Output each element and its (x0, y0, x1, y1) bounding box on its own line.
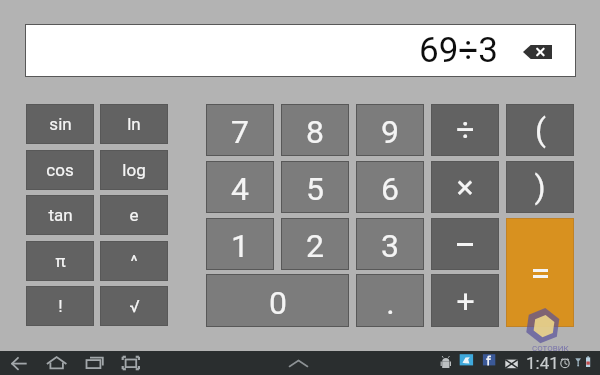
button[interactable]: 1 (207, 219, 273, 269)
button[interactable]: ) (507, 162, 573, 212)
button[interactable]: 2 (282, 219, 348, 269)
button[interactable]: 4 (207, 162, 273, 212)
button[interactable]: Show notifications (286, 351, 311, 375)
staticText: × (456, 168, 474, 206)
button[interactable]: 6 (357, 162, 423, 212)
button[interactable]: Recent apps (82, 351, 107, 375)
staticText: tan (48, 205, 73, 225)
staticText: 4 (231, 170, 249, 208)
button[interactable]: ! (27, 287, 93, 325)
staticText: π (55, 251, 66, 271)
staticText: СОТОВИК (532, 344, 569, 353)
button[interactable]: ( (507, 105, 573, 155)
staticText: log (122, 160, 146, 180)
button[interactable]: Screenshot (118, 351, 143, 375)
staticText: + (456, 282, 475, 320)
button[interactable]: log (101, 151, 167, 189)
staticText: 5 (306, 170, 324, 208)
button[interactable]: √ (101, 287, 167, 325)
staticText: 0 (269, 284, 287, 322)
button[interactable]: Equals (507, 219, 573, 326)
button[interactable]: e (101, 196, 167, 234)
staticText: e (129, 205, 139, 225)
staticText: . (386, 284, 395, 322)
staticText: 8 (306, 113, 324, 151)
staticText: ) (534, 168, 546, 206)
button[interactable]: 0 (207, 275, 348, 326)
staticText: ÷ (456, 111, 475, 149)
button[interactable]: cos (27, 151, 93, 189)
staticText: 1:41 (526, 353, 559, 373)
staticText: ( (535, 111, 546, 149)
button[interactable]: . (357, 275, 423, 326)
staticText: 6 (381, 170, 399, 208)
staticText: cos (46, 160, 74, 180)
staticText: ln (127, 114, 141, 134)
button[interactable]: × (432, 162, 498, 212)
button[interactable]: ln (101, 105, 167, 143)
button[interactable]: ÷ (432, 105, 498, 155)
staticText: 7 (231, 113, 249, 151)
staticText: 69÷3 (419, 30, 499, 71)
staticText: ^ (130, 251, 138, 271)
staticText: sin (49, 114, 72, 134)
staticText: √ (129, 296, 140, 316)
button[interactable]: ^ (101, 242, 167, 280)
button[interactable]: + (432, 275, 498, 326)
button[interactable]: Status (434, 351, 596, 375)
staticText: 9 (381, 113, 399, 151)
button[interactable]: tan (27, 196, 93, 234)
button[interactable]: sin (27, 105, 93, 143)
button[interactable]: 3 (357, 219, 423, 269)
button[interactable]: Delete (523, 45, 552, 59)
staticText: ! (58, 296, 63, 316)
button[interactable]: Back (7, 351, 32, 375)
button[interactable]: 5 (282, 162, 348, 212)
button[interactable]: 8 (282, 105, 348, 155)
button[interactable]: 7 (207, 105, 273, 155)
button[interactable]: Home (44, 351, 69, 375)
staticText: 3 (381, 227, 399, 265)
button[interactable]: Minus (432, 219, 498, 269)
button[interactable]: 9 (357, 105, 423, 155)
staticText: 2 (306, 227, 324, 265)
button[interactable]: π (27, 242, 93, 280)
staticText: 1 (231, 227, 249, 265)
